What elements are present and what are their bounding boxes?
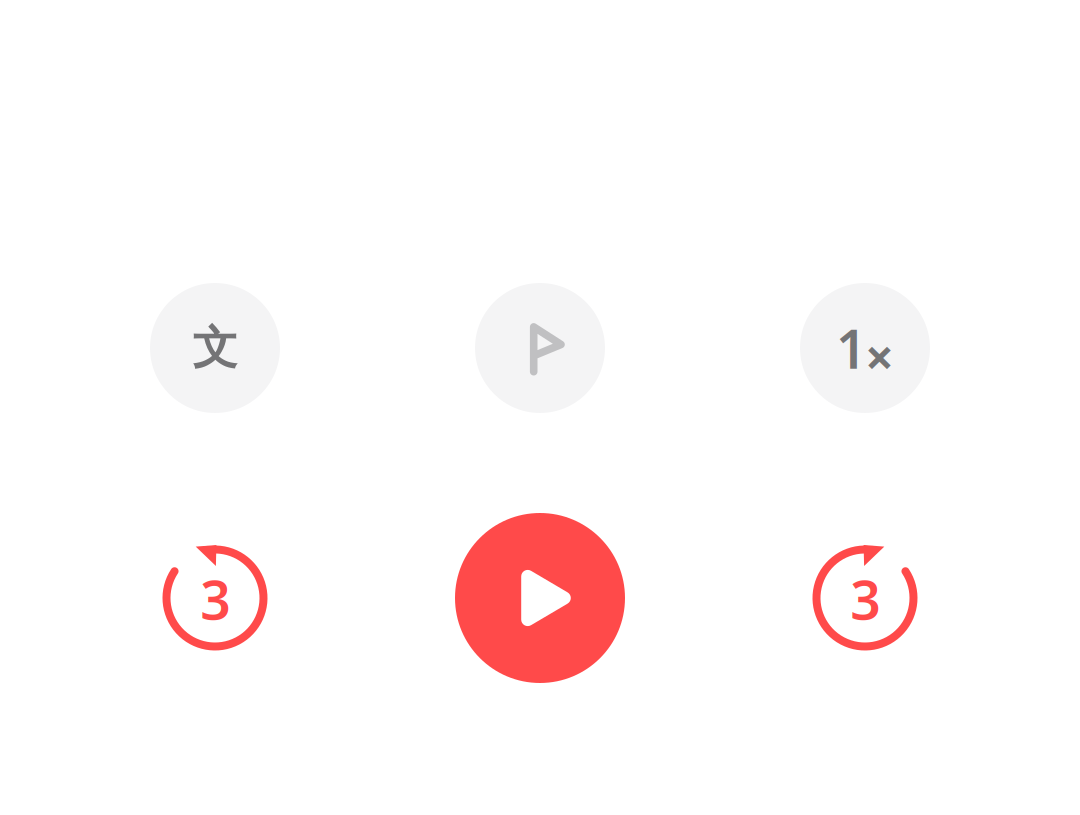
button[interactable]: Add bookmark bbox=[475, 283, 605, 413]
staticText: 3 bbox=[850, 564, 881, 634]
button[interactable]: Skip back 3 seconds bbox=[150, 533, 280, 663]
staticText: 3 bbox=[200, 564, 231, 634]
staticText: 1 bbox=[836, 313, 867, 383]
button[interactable]: Play bbox=[475, 533, 605, 663]
staticText: × bbox=[865, 322, 894, 390]
button[interactable]: Subtitles bbox=[150, 283, 280, 413]
staticText: 文 bbox=[192, 320, 237, 376]
button[interactable]: Playback speed bbox=[800, 283, 930, 413]
button[interactable]: Skip forward 3 seconds bbox=[800, 533, 930, 663]
